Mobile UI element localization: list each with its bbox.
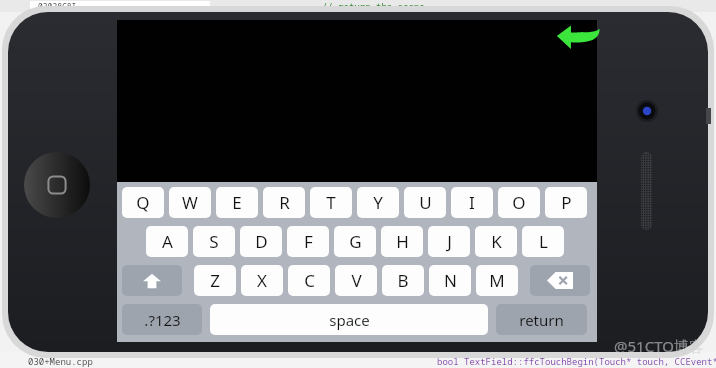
staticText: J xyxy=(447,230,452,253)
button[interactable]: O xyxy=(498,187,540,218)
staticText: U xyxy=(419,191,432,214)
button[interactable]: D xyxy=(240,226,282,257)
staticText: F xyxy=(304,230,313,253)
staticText: R xyxy=(279,191,290,214)
staticText: G xyxy=(349,230,362,253)
button[interactable]: X xyxy=(241,265,283,296)
staticText: bool TextField::ffcTouchBegin(Touch* tou… xyxy=(437,355,716,367)
staticText: I xyxy=(469,191,475,214)
button[interactable]: I xyxy=(451,187,493,218)
button[interactable]: B xyxy=(382,265,424,296)
staticText: Q xyxy=(136,191,150,214)
staticText: E xyxy=(232,191,242,214)
button[interactable]: H xyxy=(381,226,423,257)
button[interactable]: .?123 xyxy=(122,304,202,335)
staticText: K xyxy=(491,230,502,253)
staticText: // return the scene xyxy=(322,0,425,12)
staticText: P xyxy=(561,191,572,214)
staticText: C xyxy=(304,269,315,292)
button[interactable]: Z xyxy=(194,265,236,296)
button[interactable]: space xyxy=(210,304,488,335)
staticText: V xyxy=(351,269,362,292)
button[interactable]: F xyxy=(287,226,329,257)
button[interactable]: C xyxy=(288,265,330,296)
button[interactable]: Home xyxy=(24,152,90,218)
staticText: 030+Menu.cpp xyxy=(28,355,93,367)
staticText: return xyxy=(519,310,564,330)
staticText: @51CTO博客 xyxy=(614,336,704,356)
button[interactable]: U xyxy=(404,187,446,218)
staticText: W xyxy=(182,191,198,214)
button[interactable]: J xyxy=(428,226,470,257)
button[interactable]: A xyxy=(146,226,188,257)
button[interactable]: S xyxy=(193,226,235,257)
staticText: .?123 xyxy=(144,310,181,330)
button[interactable]: Y xyxy=(357,187,399,218)
staticText: H xyxy=(396,230,409,253)
staticText: M xyxy=(489,269,505,292)
staticText: X xyxy=(257,269,267,292)
button[interactable]: Delete xyxy=(530,265,590,296)
button[interactable]: N xyxy=(429,265,471,296)
staticText: B xyxy=(397,269,409,292)
staticText: L xyxy=(539,230,548,253)
staticText: Y xyxy=(373,191,383,214)
button[interactable]: L xyxy=(522,226,564,257)
staticText: Z xyxy=(210,269,220,292)
button[interactable]: M xyxy=(476,265,518,296)
button[interactable]: R xyxy=(263,187,305,218)
staticText: N xyxy=(444,269,457,292)
staticText: T xyxy=(326,191,336,214)
button[interactable]: G xyxy=(334,226,376,257)
button[interactable]: V xyxy=(335,265,377,296)
staticText: 03038C8I xyxy=(38,1,77,11)
staticText: D xyxy=(255,230,268,253)
button[interactable]: Q xyxy=(122,187,164,218)
staticText: S xyxy=(209,230,219,253)
staticText: A xyxy=(162,230,173,253)
button[interactable]: W xyxy=(169,187,211,218)
button[interactable]: K xyxy=(475,226,517,257)
button[interactable]: E xyxy=(216,187,258,218)
staticText: space xyxy=(329,310,370,330)
staticText: O xyxy=(512,191,526,214)
button[interactable]: return xyxy=(496,304,587,335)
button[interactable]: Shift xyxy=(122,265,182,296)
button[interactable]: T xyxy=(310,187,352,218)
button[interactable]: Back xyxy=(556,24,600,50)
button[interactable]: P xyxy=(545,187,587,218)
